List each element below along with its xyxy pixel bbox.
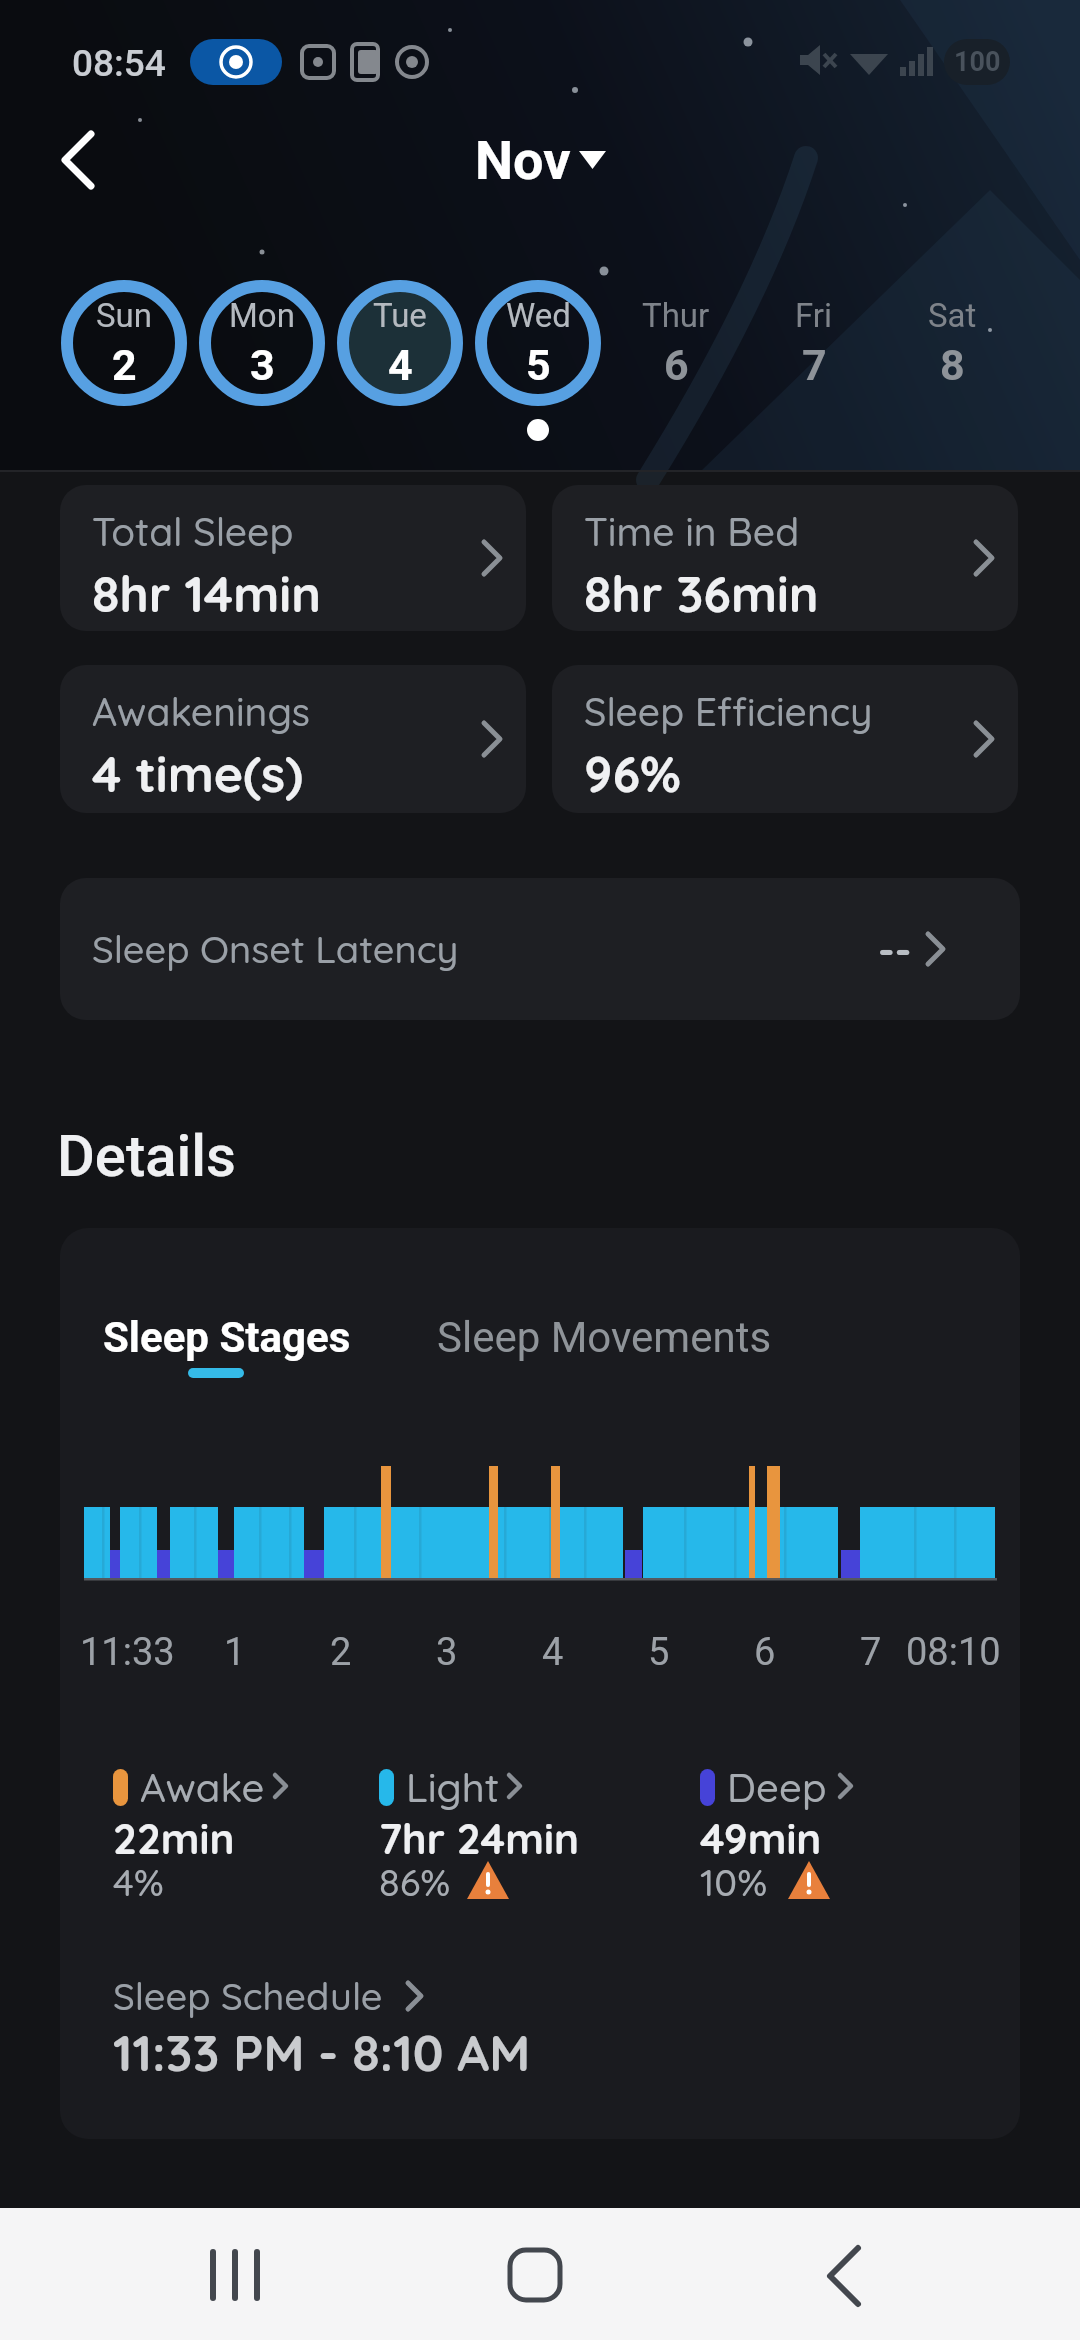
staticText: 5	[648, 1630, 670, 1675]
staticText: 3	[250, 340, 275, 390]
button[interactable]	[113, 1965, 553, 2085]
staticText: 96%	[584, 742, 681, 805]
staticText: Sleep Movements	[437, 1313, 772, 1362]
button[interactable]	[508, 2248, 562, 2302]
staticText: 6	[754, 1630, 776, 1675]
staticText: Fri	[795, 296, 833, 335]
button[interactable]	[437, 1305, 757, 1365]
button[interactable]: Nov	[0, 122, 1080, 198]
button[interactable]: Fri	[744, 279, 884, 407]
staticText: Light	[406, 1762, 500, 1812]
staticText: Sat	[928, 296, 977, 335]
staticText: 49min	[700, 1812, 822, 1858]
button[interactable]	[113, 1762, 373, 1912]
staticText: 11:33 PM - 8:10 AM	[113, 2021, 531, 2084]
button[interactable]: Sat	[882, 279, 1022, 407]
staticText: 86%	[379, 1858, 451, 1904]
staticText: 10%	[700, 1858, 768, 1904]
staticText: 6	[664, 340, 689, 390]
button[interactable]: Mon	[192, 279, 332, 407]
button[interactable]	[210, 2250, 260, 2300]
button[interactable]: Awakenings	[60, 665, 526, 813]
button[interactable]: Tue	[330, 279, 470, 407]
staticText: 08:54	[72, 42, 166, 85]
staticText: Sleep Onset Latency	[92, 925, 459, 973]
staticText: 7hr 24min	[379, 1812, 579, 1858]
staticText: Awake	[140, 1762, 265, 1812]
staticText: Nov	[475, 129, 571, 192]
staticText: 5	[526, 340, 551, 390]
staticText: 11:33	[80, 1630, 175, 1675]
staticText: Tue	[373, 296, 427, 335]
staticText: 8hr 36min	[584, 562, 819, 625]
staticText: 08:10	[906, 1630, 1001, 1675]
staticText: 8hr 14min	[92, 562, 321, 625]
staticText: 2	[112, 340, 137, 390]
staticText: 4	[388, 340, 413, 390]
staticText: Sun	[96, 296, 153, 335]
staticText: Sleep Efficiency	[584, 687, 873, 736]
staticText: 3	[436, 1630, 458, 1675]
staticText: Thur	[642, 296, 710, 335]
staticText: 2	[330, 1630, 352, 1675]
staticText: 4%	[113, 1858, 164, 1904]
button[interactable]	[103, 1305, 333, 1385]
button[interactable]: Wed	[468, 279, 608, 407]
staticText: --	[878, 923, 912, 976]
staticText: Total Sleep	[92, 507, 294, 556]
staticText: 22min	[113, 1812, 235, 1858]
button[interactable]: Thur	[606, 279, 746, 407]
button[interactable]	[40, 122, 116, 198]
button[interactable]	[379, 1762, 639, 1912]
staticText: Mon	[229, 296, 295, 335]
button[interactable]: Sun	[54, 279, 194, 407]
staticText: Deep	[727, 1762, 827, 1812]
staticText: Sleep Schedule	[113, 1972, 383, 2020]
staticText: 7	[802, 340, 827, 390]
button[interactable]	[700, 1762, 960, 1912]
button[interactable]: Time in Bed	[552, 485, 1018, 631]
button[interactable]	[60, 878, 1020, 1020]
staticText: 7	[860, 1630, 882, 1675]
staticText: Wed	[506, 296, 571, 335]
staticText: 100	[954, 46, 1001, 78]
staticText: Sleep Stages	[103, 1313, 351, 1362]
staticText: Time in Bed	[584, 507, 800, 556]
button[interactable]	[812, 2244, 876, 2308]
button[interactable]: Total Sleep	[60, 485, 526, 631]
staticText: Details	[57, 1122, 236, 1190]
staticText: 1	[224, 1630, 246, 1675]
staticText: 4 time(s)	[92, 742, 304, 805]
staticText: 4	[542, 1630, 564, 1675]
button[interactable]: Sleep Efficiency	[552, 665, 1018, 813]
staticText: 8	[940, 340, 965, 390]
staticText: Awakenings	[92, 687, 311, 736]
